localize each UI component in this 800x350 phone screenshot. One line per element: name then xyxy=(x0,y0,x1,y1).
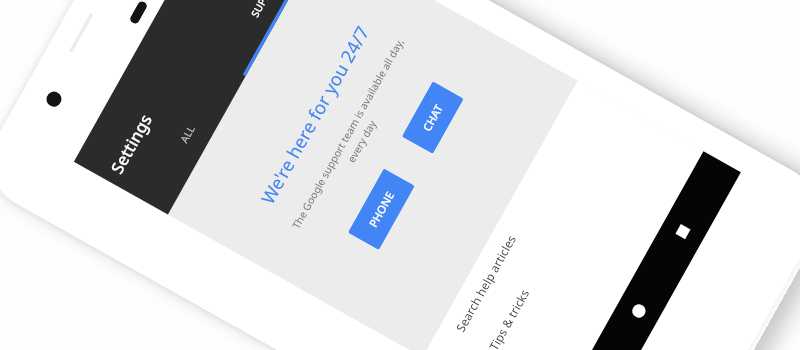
staticText: SUPPORT xyxy=(247,0,283,20)
staticText: CHAT xyxy=(419,101,446,134)
staticText: ALL xyxy=(177,123,198,146)
button[interactable]: CHAT xyxy=(402,81,464,154)
button[interactable]: Tips & tricks xyxy=(456,99,644,350)
button[interactable]: Recents xyxy=(672,221,694,242)
staticText: Tips & tricks xyxy=(485,286,533,350)
button[interactable]: SUPPORT xyxy=(207,0,323,76)
button[interactable]: Home xyxy=(627,300,649,322)
button[interactable]: PHONE xyxy=(348,168,415,250)
button[interactable]: Search help articles xyxy=(422,81,611,350)
staticText: Search help articles xyxy=(452,232,519,334)
button[interactable]: ALL xyxy=(129,54,245,214)
staticText: The Google support team is available all… xyxy=(264,0,445,283)
staticText: Settings xyxy=(106,110,157,178)
staticText: We're here for you 24/7 xyxy=(226,0,403,259)
staticText: PHONE xyxy=(365,189,397,230)
